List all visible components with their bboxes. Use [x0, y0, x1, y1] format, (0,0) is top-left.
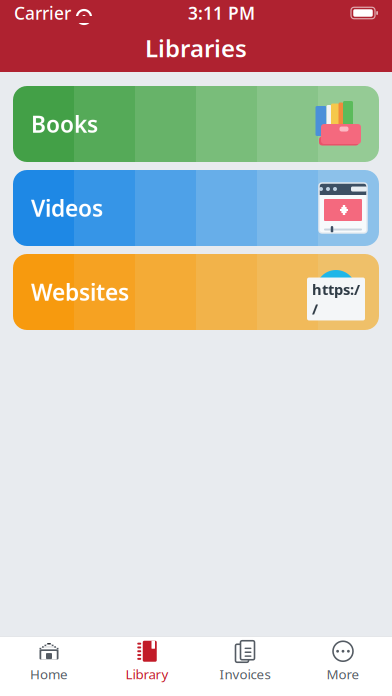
staticText: Libraries [145, 32, 247, 64]
staticText: Websites [31, 277, 129, 307]
button[interactable]: More [294, 634, 392, 687]
staticText: Books [31, 109, 98, 139]
staticText: More [326, 665, 359, 683]
button[interactable]: Home [0, 634, 98, 687]
button[interactable]: Videos [13, 170, 379, 246]
button[interactable]: Invoices [196, 634, 294, 687]
staticText: Library [125, 665, 168, 683]
button[interactable]: Library [98, 634, 196, 687]
staticText: Carrier [14, 1, 71, 24]
staticText: Videos [31, 193, 103, 223]
staticText: https:// [312, 279, 360, 318]
button[interactable]: Books [13, 86, 379, 162]
staticText: 3:11 PM [188, 1, 255, 24]
staticText: Invoices [219, 665, 270, 683]
staticText: Home [30, 665, 68, 683]
button[interactable]: Websites [13, 254, 379, 330]
